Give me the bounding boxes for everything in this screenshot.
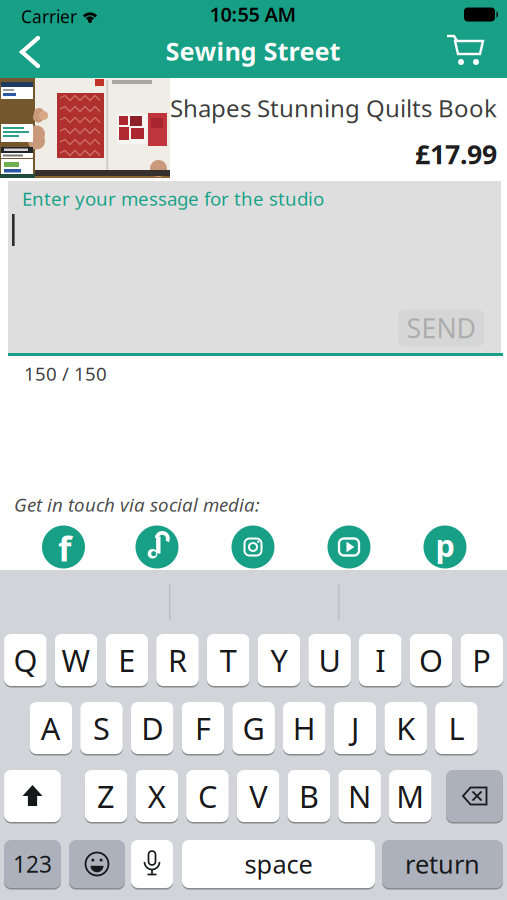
button[interactable]: Z (85, 769, 127, 823)
staticText: D (141, 708, 163, 748)
staticText: G (243, 708, 265, 748)
button[interactable]: 123 (4, 839, 61, 889)
button[interactable] (135, 525, 178, 568)
staticText: Z (97, 776, 115, 816)
button[interactable]: L (435, 701, 478, 755)
button[interactable]: A (29, 701, 72, 755)
button[interactable]: V (237, 769, 279, 823)
staticText: V (249, 776, 267, 816)
button[interactable] (10, 30, 54, 74)
button[interactable] (446, 769, 503, 823)
staticText: 150 / 150 (24, 361, 107, 386)
staticText: F (195, 708, 211, 748)
staticText: X (148, 776, 166, 816)
button[interactable]: Q (4, 633, 47, 687)
button[interactable]: I (359, 633, 402, 687)
button[interactable]: T (207, 633, 249, 687)
staticText: U (319, 640, 341, 680)
staticText: f (58, 525, 71, 571)
staticText: A (41, 708, 61, 748)
button[interactable]: Simple Shapes Stunning Quilts Book (0, 78, 507, 181)
staticText: SEND (406, 310, 475, 346)
staticText: p (435, 525, 454, 565)
staticText: return (405, 847, 480, 881)
button[interactable]: p (423, 525, 466, 568)
staticText: Simple Shapes Stunning Quilts Book (88, 92, 497, 124)
staticText: R (168, 640, 187, 680)
button[interactable]: space (182, 839, 375, 889)
staticText: S (93, 708, 110, 748)
button[interactable]: O (410, 633, 452, 687)
button[interactable]: B (288, 769, 330, 823)
staticText: Carrier (21, 5, 77, 28)
staticText: B (299, 776, 319, 816)
button[interactable]: J (334, 701, 376, 755)
staticText: Sewing Street (165, 34, 340, 68)
staticText: Get in touch via social media: (14, 492, 260, 517)
button[interactable]: C (186, 769, 229, 823)
staticText: space (244, 847, 312, 881)
button[interactable]: X (135, 769, 178, 823)
staticText: J (351, 708, 359, 748)
button[interactable]: S (80, 701, 123, 755)
button[interactable] (8, 181, 501, 353)
button[interactable]: H (283, 701, 326, 755)
button[interactable]: D (131, 701, 173, 755)
button[interactable]: R (156, 633, 199, 687)
button[interactable] (4, 769, 61, 823)
button[interactable]: U (308, 633, 351, 687)
staticText: T (220, 640, 237, 680)
staticText: K (396, 708, 415, 748)
staticText: W (62, 640, 91, 680)
staticText: P (472, 640, 491, 680)
button[interactable]: return (382, 839, 503, 889)
button[interactable]: f (42, 525, 85, 568)
staticText: £17.99 (415, 136, 497, 172)
button[interactable]: M (389, 769, 432, 823)
button[interactable]: E (105, 633, 148, 687)
button[interactable]: P (460, 633, 503, 687)
staticText: 10:55 AM (209, 1, 296, 27)
button[interactable]: Y (258, 633, 300, 687)
staticText: E (118, 640, 135, 680)
staticText: 123 (13, 849, 52, 879)
button[interactable]: G (232, 701, 275, 755)
button[interactable] (327, 525, 370, 568)
staticText: M (396, 776, 424, 816)
button[interactable]: SEND (398, 309, 484, 346)
staticText: Y (270, 640, 287, 680)
button[interactable]: K (384, 701, 427, 755)
button[interactable]: N (338, 769, 381, 823)
staticText: Q (13, 640, 37, 680)
button[interactable] (445, 29, 489, 73)
staticText: H (293, 708, 316, 748)
button[interactable] (131, 839, 173, 889)
button[interactable]: F (182, 701, 224, 755)
staticText: Enter your message for the studio (22, 186, 324, 211)
button[interactable]: W (55, 633, 97, 687)
staticText: I (375, 640, 385, 680)
button[interactable] (69, 839, 125, 889)
staticText: C (198, 776, 217, 816)
staticText: L (448, 708, 464, 748)
button[interactable] (231, 525, 274, 568)
staticText: O (419, 640, 443, 680)
staticText: N (348, 776, 371, 816)
